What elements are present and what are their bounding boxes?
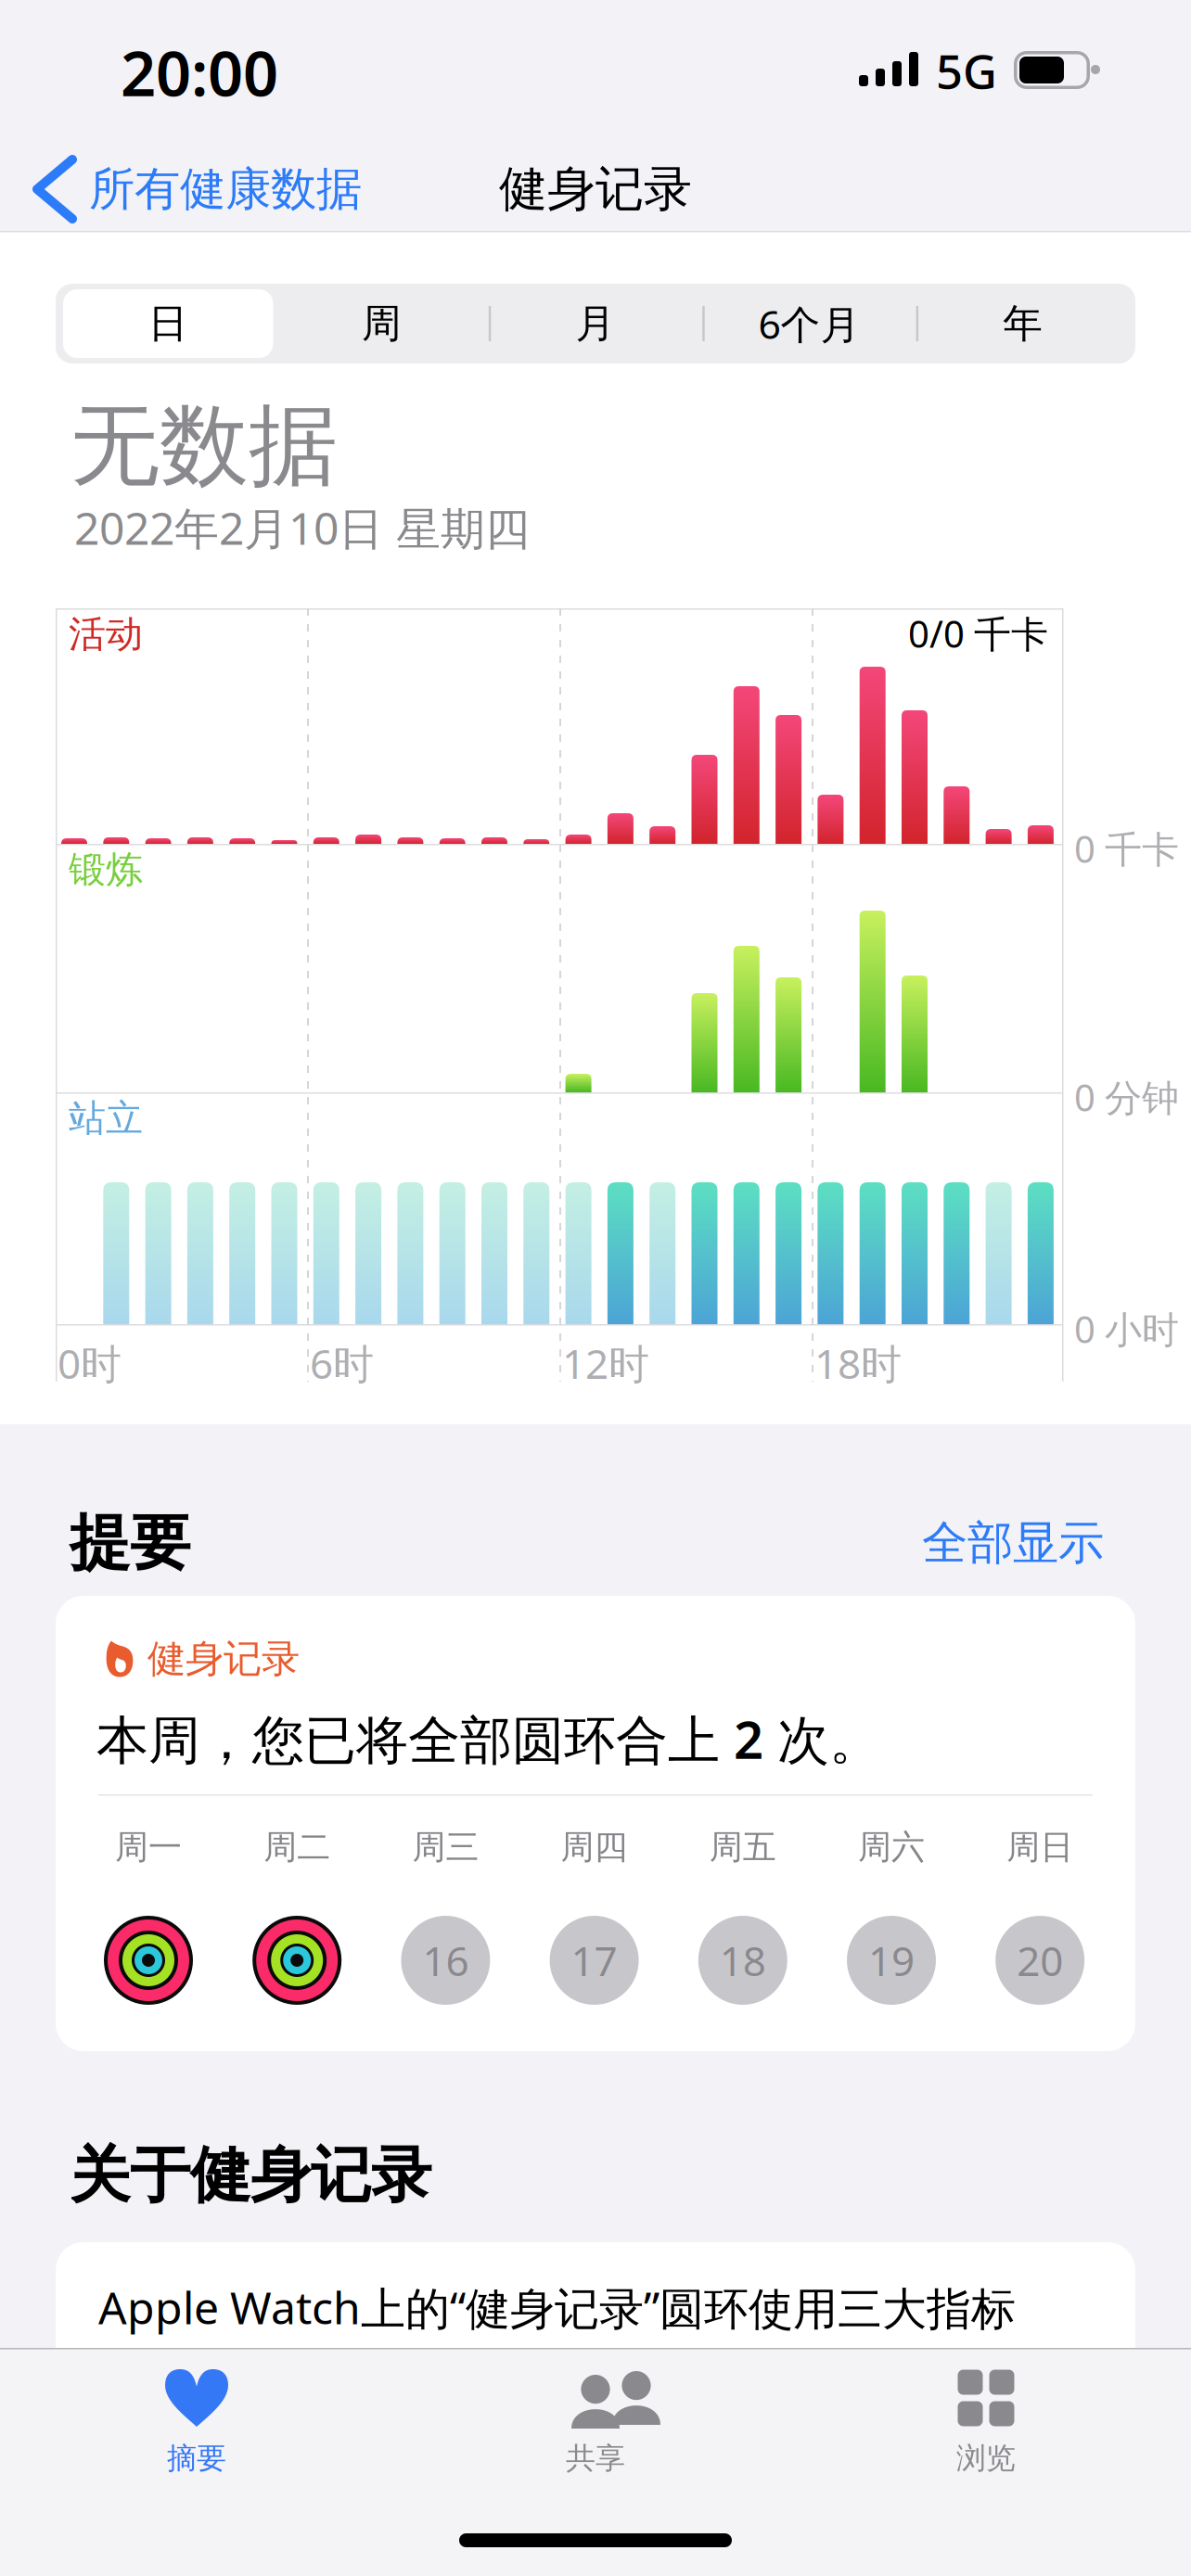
button[interactable]: 日: [61, 284, 275, 363]
staticText: 摘要: [167, 2440, 226, 2476]
staticText: 健身记录: [499, 160, 692, 219]
staticText: 0 分钟: [1074, 1072, 1179, 1122]
staticText: 提要: [70, 1506, 190, 1580]
staticText: 站立: [69, 1095, 143, 1141]
staticText: 18时: [814, 1336, 902, 1390]
staticText: 0 小时: [1074, 1304, 1179, 1353]
staticText: 周: [362, 299, 402, 348]
staticText: 20:00: [121, 31, 278, 113]
staticText: 月: [576, 299, 615, 348]
staticText: 12时: [562, 1336, 649, 1390]
staticText: 19: [868, 1933, 915, 1987]
staticText: Apple Watch上的“健身记录”圆环使用三大指标: [98, 2277, 1016, 2337]
staticText: 活动: [69, 611, 143, 657]
staticText: 6个月: [758, 297, 860, 350]
button[interactable]: Apple Watch上的“健身记录”圆环使用三大指标: [56, 2242, 1135, 2483]
button[interactable]: 周: [275, 284, 489, 363]
staticText: 2022年2月10日 星期四: [74, 498, 530, 557]
button[interactable]: 浏览: [847, 2369, 1125, 2518]
staticText: 浏览: [956, 2440, 1016, 2476]
staticText: 关于健身记录: [70, 2138, 431, 2213]
staticText: 周五: [709, 1827, 776, 1868]
button[interactable]: 6个月: [702, 284, 916, 363]
staticText: 健身记录: [147, 1635, 300, 1682]
staticText: 本周，您已将全部圆环合上 2 次。: [96, 1704, 881, 1773]
staticText: 0/0 千卡: [908, 609, 1048, 658]
staticText: 年: [1003, 299, 1043, 348]
staticText: 16: [422, 1933, 469, 1987]
button[interactable]: 共享: [456, 2369, 735, 2518]
staticText: 周日: [1007, 1827, 1073, 1868]
staticText: 周六: [858, 1827, 925, 1868]
staticText: 0 千卡: [1074, 824, 1179, 873]
staticText: 所有健康数据: [89, 161, 362, 217]
staticText: 20: [1017, 1933, 1063, 1987]
button[interactable]: 所有健康数据: [37, 159, 362, 219]
staticText: 周二: [264, 1827, 330, 1868]
button[interactable]: 摘要: [58, 2369, 336, 2518]
staticText: 6时: [310, 1336, 374, 1390]
staticText: 共享: [566, 2440, 625, 2476]
button[interactable]: 月: [489, 284, 702, 363]
staticText: 日: [148, 299, 188, 348]
staticText: 周一: [115, 1827, 182, 1868]
button[interactable]: 健身记录: [56, 1596, 1135, 2051]
staticText: 18: [720, 1933, 766, 1987]
staticText: 周四: [561, 1827, 628, 1868]
staticText: 17: [571, 1933, 617, 1987]
button[interactable]: 全部显示: [751, 1515, 1104, 1571]
button[interactable]: 年: [916, 284, 1130, 363]
staticText: 0时: [58, 1336, 122, 1390]
staticText: 5G: [936, 39, 997, 102]
staticText: 锻炼: [69, 847, 143, 893]
staticText: 无数据: [70, 391, 338, 501]
staticText: 全部显示: [922, 1515, 1104, 1571]
staticText: 周三: [412, 1827, 479, 1868]
